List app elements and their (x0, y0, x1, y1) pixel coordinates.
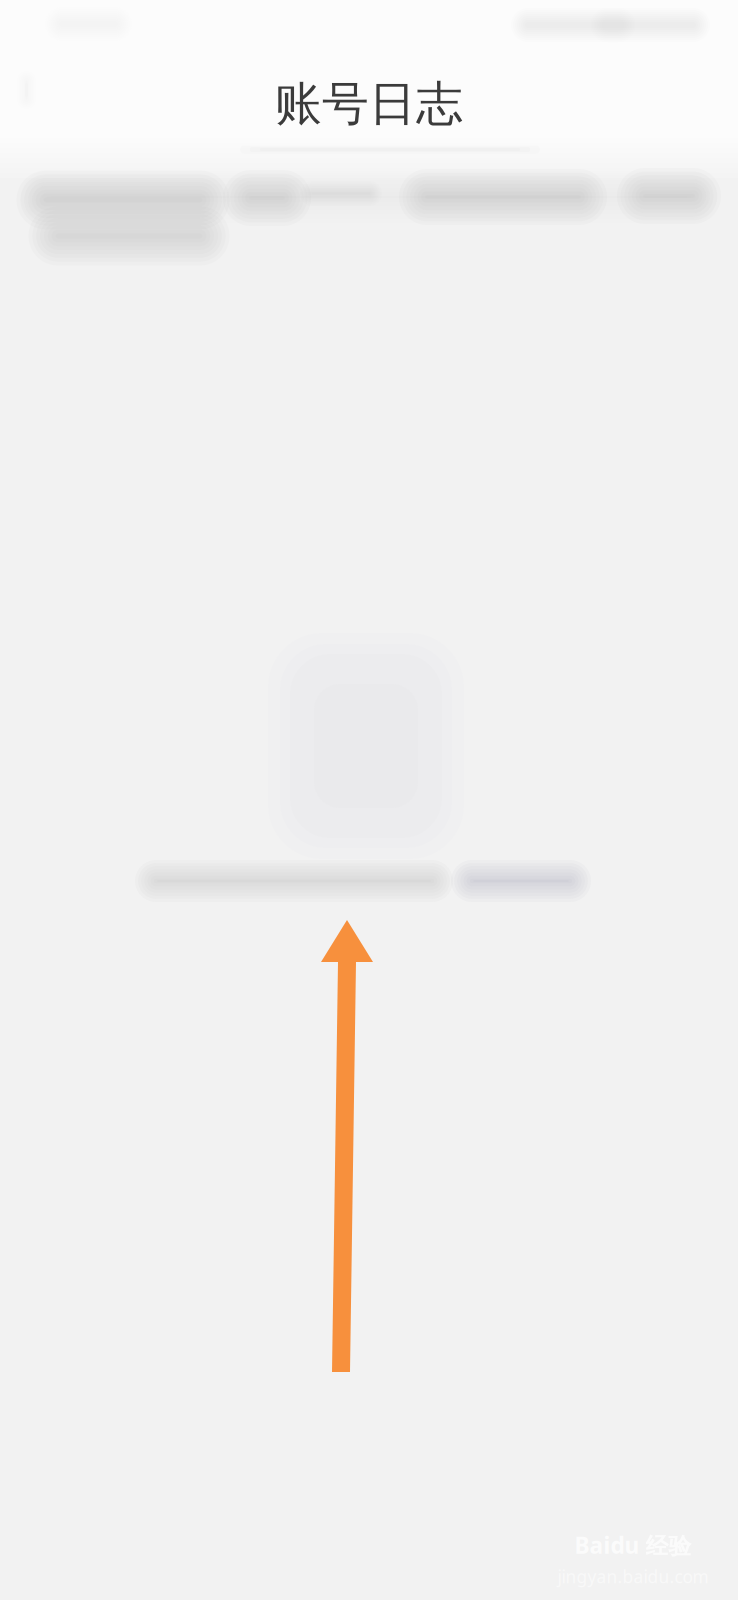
staticText: 账号日志 (275, 75, 463, 133)
staticText: Baidu 经验 (574, 1530, 691, 1560)
